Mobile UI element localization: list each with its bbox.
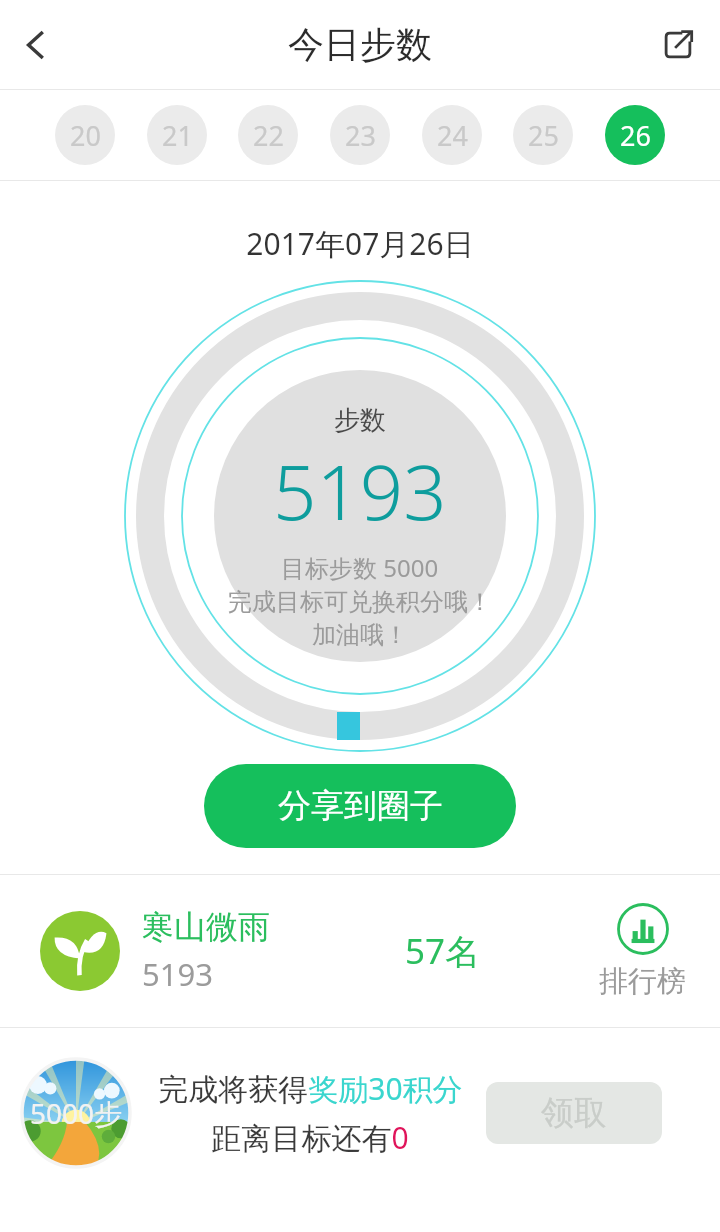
- staticText: 20: [70, 117, 101, 154]
- staticText: 今日步数: [288, 22, 432, 67]
- staticText: 领取: [541, 1092, 607, 1134]
- staticText: 目标步数 5000: [281, 551, 439, 584]
- button[interactable]: 22: [238, 105, 298, 165]
- staticText: 5193: [142, 953, 213, 995]
- button[interactable]: 寒山微雨: [0, 875, 720, 1027]
- staticText: 排行榜: [599, 963, 686, 1000]
- button[interactable]: Share: [648, 15, 708, 75]
- button[interactable]: 21: [147, 105, 207, 165]
- staticText: 21: [162, 117, 193, 154]
- button[interactable]: 20: [55, 105, 115, 165]
- staticText: 23: [345, 117, 376, 154]
- button[interactable]: 23: [330, 105, 390, 165]
- button[interactable]: 分享到圈子: [204, 764, 516, 848]
- staticText: 2017年07月26日: [0, 223, 720, 264]
- staticText: 完成目标可兑换积分哦！: [228, 587, 492, 617]
- staticText: 寒山微雨: [142, 907, 270, 947]
- button[interactable]: 25: [513, 105, 573, 165]
- staticText: 26: [620, 117, 651, 154]
- button[interactable]: 领取: [486, 1082, 662, 1144]
- button[interactable]: 24: [422, 105, 482, 165]
- staticText: 加油哦！: [312, 620, 408, 650]
- button[interactable]: 排行榜: [599, 903, 686, 1000]
- staticText: 分享到圈子: [278, 785, 443, 827]
- staticText: 5193: [273, 439, 447, 543]
- staticText: 22: [253, 117, 284, 154]
- button[interactable]: Back: [6, 15, 66, 75]
- staticText: 步数: [334, 404, 386, 437]
- staticText: 完成将获得奖励30积分: [158, 1068, 463, 1109]
- staticText: 24: [437, 117, 468, 154]
- staticText: 距离目标还有0: [211, 1117, 409, 1158]
- button[interactable]: 26: [605, 105, 665, 165]
- staticText: 25: [528, 117, 559, 154]
- staticText: 5000步: [30, 1094, 123, 1132]
- staticText: 57名: [405, 927, 481, 975]
